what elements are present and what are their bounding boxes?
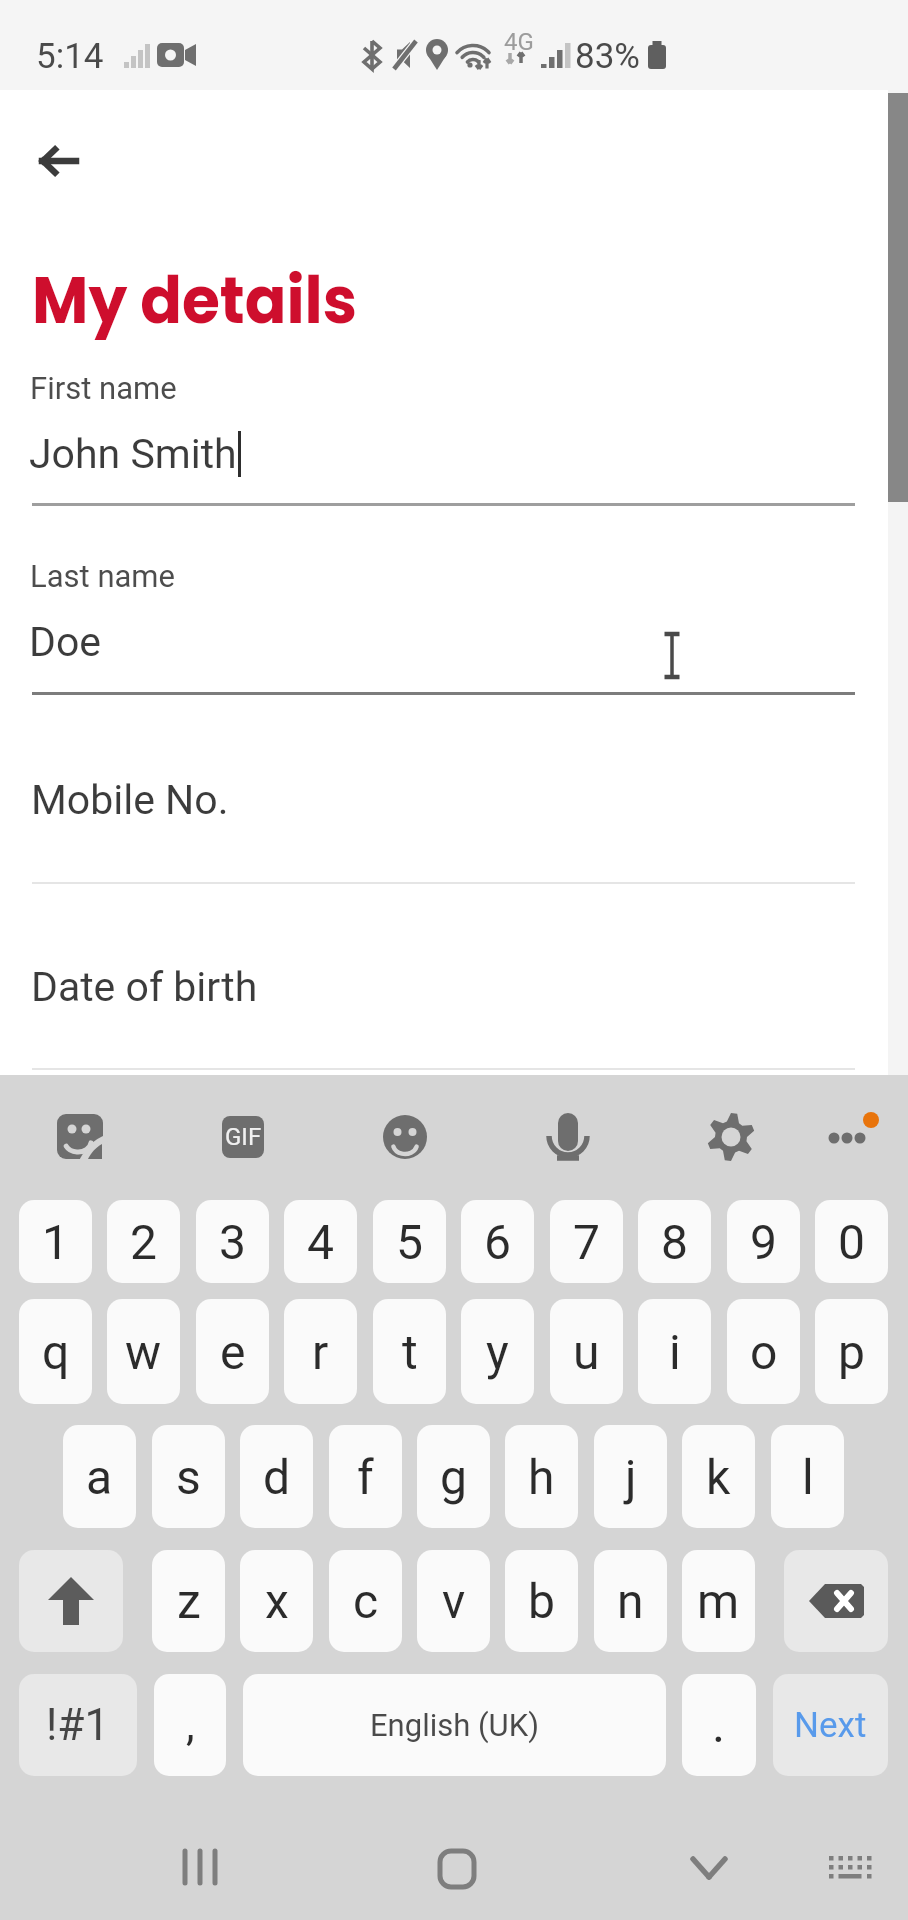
staticText: h <box>528 1449 555 1505</box>
staticText: z <box>177 1573 201 1629</box>
staticText: g <box>440 1449 467 1505</box>
staticText: o <box>750 1324 778 1380</box>
staticText: s <box>176 1449 201 1505</box>
button[interactable]: p <box>815 1299 888 1404</box>
button[interactable]: s <box>152 1425 225 1528</box>
button[interactable]: c <box>329 1550 402 1652</box>
button[interactable]: j <box>594 1425 667 1528</box>
button[interactable]: k <box>682 1425 755 1528</box>
button[interactable]: u <box>550 1299 623 1404</box>
button[interactable]: Back <box>26 128 92 194</box>
button[interactable]: v <box>417 1550 490 1652</box>
button[interactable]: Next <box>773 1674 888 1776</box>
button[interactable]: z <box>152 1550 225 1652</box>
staticText: d <box>263 1449 291 1505</box>
staticText: v <box>442 1573 466 1629</box>
button[interactable]: e <box>196 1299 269 1404</box>
staticText: 0 <box>838 1214 865 1270</box>
button[interactable]: f <box>329 1425 402 1528</box>
staticText: Last name <box>30 558 175 594</box>
button[interactable]: Keyboard settings <box>707 1113 755 1161</box>
staticText: q <box>42 1324 70 1380</box>
button[interactable]: Switch keyboard <box>809 1829 889 1909</box>
staticText: Mobile No. <box>31 776 229 824</box>
button[interactable]: b <box>505 1550 578 1652</box>
button[interactable]: y <box>461 1299 534 1404</box>
button[interactable]: x <box>240 1550 313 1652</box>
button[interactable]: Recents <box>150 1825 250 1905</box>
button[interactable]: m <box>682 1550 755 1652</box>
staticText: John Smith <box>29 430 237 478</box>
staticText: m <box>697 1573 740 1629</box>
staticText: x <box>265 1573 289 1629</box>
staticText: Doe <box>29 618 102 666</box>
button[interactable]: More options <box>818 1108 886 1164</box>
button[interactable]: 2 <box>107 1200 180 1283</box>
button[interactable]: 3 <box>196 1200 269 1283</box>
button[interactable]: h <box>505 1425 578 1528</box>
staticText: 4G <box>504 28 534 56</box>
button[interactable]: 5 <box>373 1200 446 1283</box>
staticText: a <box>86 1449 113 1505</box>
staticText: b <box>528 1573 555 1629</box>
staticText: 5:14 <box>36 36 104 77</box>
button[interactable]: Home <box>405 1825 505 1905</box>
button[interactable]: !#1 <box>19 1674 137 1776</box>
staticText: t <box>402 1324 418 1380</box>
staticText: 83% <box>575 36 640 77</box>
staticText: 3 <box>219 1214 246 1270</box>
button[interactable]: o <box>727 1299 800 1404</box>
button[interactable]: 9 <box>727 1200 800 1283</box>
button[interactable]: Backspace <box>784 1550 888 1652</box>
staticText: i <box>669 1324 681 1380</box>
staticText: e <box>220 1324 246 1380</box>
button[interactable]: Voice input <box>544 1108 592 1168</box>
staticText: GIF <box>225 1123 262 1151</box>
staticText: English (UK) <box>370 1707 539 1743</box>
staticText: 1 <box>42 1214 69 1270</box>
button[interactable]: a <box>63 1425 136 1528</box>
button[interactable]: Stickers <box>52 1109 108 1165</box>
button[interactable]: n <box>594 1550 667 1652</box>
button[interactable]: Hide keyboard <box>658 1825 758 1905</box>
button[interactable]: GIF <box>222 1116 264 1158</box>
staticText: y <box>486 1324 509 1380</box>
button[interactable]: . <box>682 1674 756 1776</box>
button[interactable]: d <box>240 1425 313 1528</box>
staticText: , <box>186 1699 195 1751</box>
button[interactable]: 8 <box>638 1200 711 1283</box>
staticText: 8 <box>661 1214 688 1270</box>
button[interactable]: 1 <box>19 1200 92 1283</box>
button[interactable]: 6 <box>461 1200 534 1283</box>
button[interactable]: Emoji <box>381 1113 429 1161</box>
staticText: c <box>353 1573 379 1629</box>
button[interactable]: 7 <box>550 1200 623 1283</box>
button[interactable]: i <box>638 1299 711 1404</box>
staticText: n <box>617 1573 644 1629</box>
button[interactable]: Shift <box>19 1550 123 1652</box>
staticText: w <box>125 1324 162 1380</box>
button[interactable]: l <box>771 1425 844 1528</box>
staticText: 2 <box>130 1214 157 1270</box>
staticText: Next <box>794 1705 867 1746</box>
staticText: Date of birth <box>31 963 258 1011</box>
staticText: j <box>625 1449 637 1505</box>
button[interactable]: 0 <box>815 1200 888 1283</box>
button[interactable]: t <box>373 1299 446 1404</box>
staticText: r <box>312 1324 329 1380</box>
staticText: u <box>573 1324 600 1380</box>
staticText: !#1 <box>46 1699 110 1751</box>
button[interactable]: 4 <box>284 1200 357 1283</box>
button[interactable]: w <box>107 1299 180 1404</box>
button[interactable]: English (UK) <box>243 1674 666 1776</box>
staticText: p <box>838 1324 865 1380</box>
button[interactable]: , <box>154 1674 226 1776</box>
staticText: 4 <box>307 1214 334 1270</box>
staticText: 5 <box>396 1214 423 1270</box>
staticText: First name <box>30 370 177 406</box>
staticText: k <box>706 1449 731 1505</box>
button[interactable]: g <box>417 1425 490 1528</box>
button[interactable]: q <box>19 1299 92 1404</box>
button[interactable]: r <box>284 1299 357 1404</box>
staticText: My details <box>32 255 357 346</box>
